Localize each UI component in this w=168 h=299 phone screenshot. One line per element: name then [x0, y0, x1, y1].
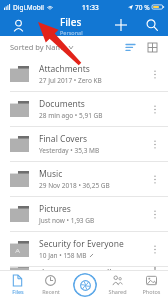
button[interactable]: Discover: [68, 271, 101, 299]
button[interactable]: More options for Pictures: [148, 197, 162, 231]
staticText: documents-anu diana: [39, 267, 127, 270]
staticText: Digi.Mobil: [13, 3, 45, 12]
button[interactable]: Add: [106, 14, 136, 36]
button[interactable]: Search: [136, 14, 168, 36]
button[interactable]: Files: [1, 271, 34, 299]
staticText: Music: [39, 168, 63, 180]
button[interactable]: More options for Attachments: [148, 57, 162, 91]
staticText: Personal: [60, 29, 83, 36]
staticText: 28 min ago • 5,91 GB: [39, 111, 103, 120]
button[interactable]: More options for Security for Everyone: [148, 232, 162, 266]
button[interactable]: More options for Final Covers: [148, 127, 162, 161]
staticText: Just now • 1,93 GB: [39, 216, 95, 225]
button[interactable]: Security for Everyone: [0, 232, 168, 267]
staticText: Yesterday • 35,3 MB: [39, 146, 100, 155]
button[interactable]: documents-anu diana: [0, 267, 168, 270]
button[interactable]: More options for Music: [148, 162, 162, 196]
button[interactable]: Sort: [122, 39, 138, 55]
button[interactable]: Photos: [135, 271, 168, 299]
staticText: Files: [12, 288, 24, 295]
staticText: Recent: [42, 288, 60, 295]
button[interactable]: Pictures: [0, 197, 168, 232]
staticText: Documents: [39, 98, 85, 110]
staticText: Shared: [108, 288, 127, 295]
button[interactable]: Recent: [34, 271, 67, 299]
staticText: Sorted by Name: [10, 42, 67, 52]
staticText: 10 Jan • 158 MB: [39, 251, 87, 260]
staticText: 27 Jul 2017 • Zero KB: [39, 76, 102, 85]
button[interactable]: Final Covers: [0, 127, 168, 162]
staticText: 29 Nov 2018 • 36,25 GB: [39, 181, 110, 190]
button[interactable]: Sorted by Name: [10, 42, 73, 52]
staticText: Pictures: [39, 203, 71, 215]
staticText: Files: [60, 15, 82, 29]
button[interactable]: Music: [0, 162, 168, 197]
staticText: Security for Everyone: [39, 238, 124, 250]
button[interactable]: More options for documents-anu diana: [148, 267, 162, 270]
staticText: 70 %: [135, 3, 150, 12]
staticText: Attachments: [39, 63, 90, 75]
button[interactable]: Grid view: [144, 39, 160, 55]
button[interactable]: Attachments: [0, 57, 168, 92]
staticText: 11:33: [82, 3, 99, 12]
button[interactable]: Account: [0, 14, 36, 36]
staticText: Photos: [142, 288, 161, 295]
staticText: Final Covers: [39, 133, 88, 145]
button[interactable]: Shared: [101, 271, 134, 299]
button[interactable]: More options for Documents: [148, 92, 162, 126]
button[interactable]: Documents: [0, 92, 168, 127]
